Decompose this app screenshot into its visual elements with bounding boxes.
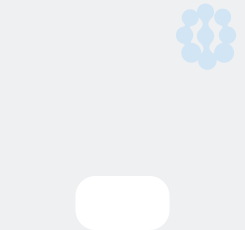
button[interactable]: Open <box>75 176 169 230</box>
